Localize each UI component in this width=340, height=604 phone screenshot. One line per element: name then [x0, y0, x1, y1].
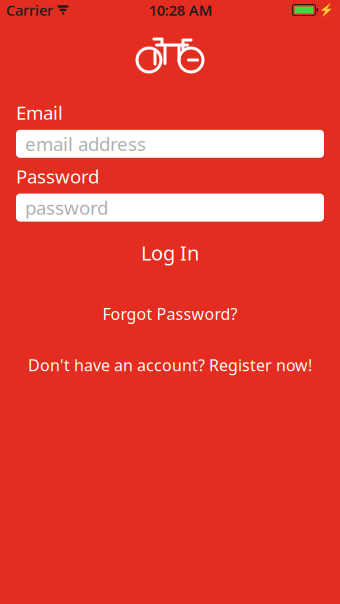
button[interactable]: Forgot Password?: [0, 297, 340, 330]
staticText: Forgot Password?: [102, 303, 237, 324]
staticText: Log In: [141, 240, 199, 266]
staticText: Don't have an account? Register now!: [28, 354, 312, 376]
staticText: Password: [16, 164, 99, 189]
button[interactable]: Log In: [0, 234, 340, 272]
staticText: 10:28 AM: [149, 0, 213, 20]
button[interactable]: password: [16, 194, 324, 222]
staticText: email address: [25, 131, 146, 156]
staticText: ⚡: [319, 3, 334, 17]
staticText: Carrier: [6, 0, 53, 20]
button[interactable]: email address: [16, 130, 324, 158]
staticText: password: [25, 195, 108, 220]
button[interactable]: Don't have an account? Register now!: [0, 348, 340, 382]
staticText: Email: [16, 100, 63, 125]
